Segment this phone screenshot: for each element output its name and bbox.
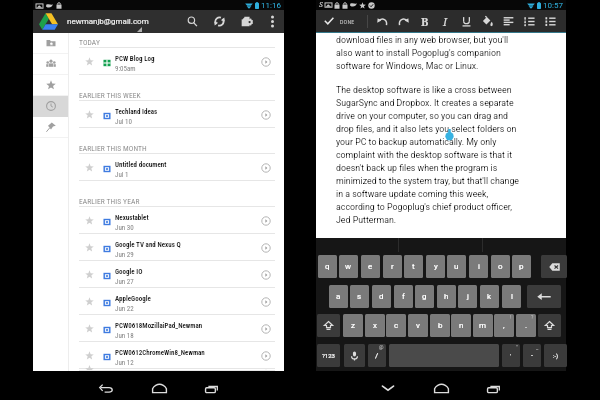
button[interactable]: More options [260,10,284,33]
button[interactable]: Navigation [33,54,69,74]
button[interactable]: i [469,255,488,278]
button[interactable]: o [491,255,510,278]
button[interactable]: Shift [538,314,561,337]
button[interactable]: PCW0612ChromeWin8_Newman [69,342,284,369]
button[interactable]: :-) [544,344,567,367]
button[interactable]: Voice input [344,344,365,367]
button[interactable]: Item options [254,370,278,371]
staticText: Nexustablet [115,214,149,222]
button[interactable]: Google TV and Nexus Q [69,234,284,261]
staticText: 11:16 [261,1,281,10]
button[interactable]: PCW0610 [69,369,284,371]
staticText: c [394,321,399,330]
button[interactable]: DONE [322,10,357,32]
button[interactable]: Redo [393,10,414,32]
button[interactable]: Search [179,10,206,33]
staticText: Jun 27 [115,278,134,286]
button[interactable]: e [361,255,380,278]
button[interactable]: v [408,314,428,337]
button[interactable]: Item options [254,208,278,234]
button[interactable]: . [516,314,536,337]
button[interactable]: Item options [254,316,278,342]
button[interactable]: g [415,285,434,308]
button[interactable]: Recents [474,377,514,399]
button[interactable]: Item options [254,102,278,128]
button[interactable]: Item options [254,49,278,75]
staticText: h [444,292,449,301]
button[interactable]: Underline [456,10,477,32]
button[interactable]: Item options [254,155,278,181]
button[interactable]: Back [86,377,126,399]
button[interactable]: Item options [254,235,278,261]
button[interactable]: s [350,285,369,308]
button[interactable]: Google IO [69,261,284,288]
button[interactable]: , [494,314,514,337]
button[interactable]: ' [502,344,520,367]
button[interactable]: Refresh [206,10,233,33]
button[interactable]: ?123 [317,344,340,367]
button[interactable]: Navigation [33,33,69,53]
staticText: q [325,262,330,271]
button[interactable]: Shift [317,314,340,337]
button[interactable]: Enter [527,285,561,308]
button[interactable]: p [512,255,531,278]
button[interactable]: d [372,285,391,308]
button[interactable]: n [451,314,471,337]
button[interactable]: AppleGoogle [69,288,284,315]
button[interactable]: Item options [254,262,278,288]
staticText: e [368,262,373,271]
button[interactable]: Undo [372,10,393,32]
button[interactable]: Align [498,10,519,32]
button[interactable]: New document [233,10,260,33]
staticText: d [379,292,384,301]
button[interactable]: y [426,255,445,278]
staticText: m [479,321,487,330]
button[interactable]: z [343,314,363,337]
staticText: ! [510,314,512,320]
button[interactable]: B [414,10,435,32]
button[interactable]: q [318,255,337,278]
button[interactable]: f [394,285,413,308]
button[interactable]: Navigation [33,96,69,116]
button[interactable]: r [383,255,402,278]
button[interactable]: Bulleted list [540,10,561,32]
staticText: _ [536,344,539,350]
button[interactable]: k [480,285,499,308]
button[interactable]: I [435,10,456,32]
button[interactable]: Hide keyboard [368,377,408,399]
button[interactable]: / [368,344,386,367]
button[interactable]: Navigation [33,75,69,95]
button[interactable]: PCW Blog Log [69,48,284,75]
button[interactable]: Recents [192,377,232,399]
button[interactable]: Item options [254,343,278,369]
button[interactable]: t [404,255,423,278]
staticText: Jun 12 [115,359,134,367]
button[interactable]: Techland Ideas [69,101,284,128]
button[interactable]: Numbered list [519,10,540,32]
button[interactable]: w [339,255,358,278]
button[interactable]: Home [139,377,179,399]
button[interactable]: x [365,314,385,337]
button[interactable]: Untitled document [69,154,284,181]
button[interactable]: m [473,314,493,337]
button[interactable]: u [447,255,466,278]
button[interactable]: l [502,285,521,308]
button[interactable]: Item options [254,289,278,315]
button[interactable]: Delete [541,255,567,278]
button[interactable]: PCW0618MozillaiPad_Newman [69,315,284,342]
button[interactable]: c [386,314,406,337]
button[interactable]: Navigation [33,117,69,137]
button[interactable]: j [458,285,477,308]
button[interactable]: Text colour [477,10,498,32]
button[interactable]: Home [421,377,461,399]
button[interactable]: h [437,285,456,308]
button[interactable]: b [430,314,450,337]
button[interactable]: a [329,285,348,308]
button[interactable]: - [523,344,541,367]
staticText: t [412,262,415,271]
button[interactable]: Nexustablet [69,207,284,234]
